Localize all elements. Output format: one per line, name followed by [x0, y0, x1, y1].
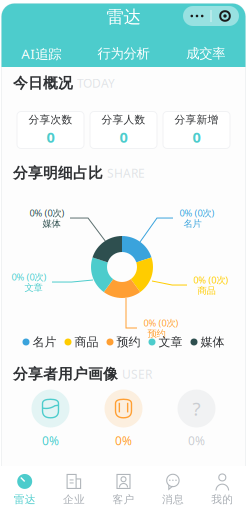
staticText: 名片	[183, 218, 201, 229]
staticText: 0% (0次)	[11, 271, 46, 283]
staticText: 客户	[112, 493, 134, 506]
staticText: 商品	[74, 335, 98, 349]
staticText: 0% (0次)	[193, 274, 228, 286]
staticText: 成交率	[186, 45, 225, 62]
staticText: 0%	[42, 432, 59, 448]
staticText: 0% (0次)	[29, 207, 64, 219]
staticText: 文章	[24, 282, 42, 293]
staticText: 0% (0次)	[179, 207, 214, 219]
staticText: 分享次数	[28, 113, 72, 126]
staticText: 我的	[211, 493, 233, 506]
staticText: 0% (0次)	[143, 317, 178, 329]
staticText: 分享明细占比	[13, 164, 103, 182]
staticText: 预约	[116, 335, 140, 349]
staticText: USER	[122, 366, 152, 382]
button[interactable]: 雷达	[0, 466, 49, 513]
staticText: 0	[192, 127, 200, 147]
staticText: 0%	[188, 432, 205, 448]
staticText: 今日概况	[13, 74, 73, 92]
staticText: AI追踪	[21, 45, 61, 62]
staticText: TODAY	[77, 75, 115, 91]
staticText: 0	[119, 127, 127, 147]
staticText: 分享者用户画像	[13, 365, 118, 383]
staticText: SHARE	[107, 165, 145, 181]
staticText: 商品	[197, 285, 215, 296]
staticText: 0%	[115, 432, 132, 448]
button[interactable]: 企业	[49, 466, 99, 513]
button[interactable]: Menu	[183, 6, 239, 26]
staticText: 媒体	[42, 218, 60, 229]
staticText: 文章	[158, 335, 182, 349]
button[interactable]: 客户	[99, 466, 148, 513]
staticText: 行为分析	[97, 45, 149, 62]
staticText: 消息	[162, 493, 184, 506]
button[interactable]: 消息	[148, 466, 198, 513]
staticText: 名片	[32, 335, 56, 349]
staticText: 预约	[147, 328, 165, 339]
button[interactable]: 行为分析	[82, 38, 165, 69]
staticText: 媒体	[200, 335, 224, 349]
staticText: 分享人数	[101, 113, 145, 126]
button[interactable]: 成交率	[165, 38, 247, 69]
staticText: 0	[46, 127, 54, 147]
staticText: 分享新增	[174, 113, 218, 126]
staticText: 雷达	[14, 493, 36, 506]
button[interactable]: AI追踪	[0, 38, 82, 69]
staticText: 企业	[63, 493, 85, 506]
staticText: 雷达	[106, 6, 140, 28]
staticText: ?	[192, 396, 200, 421]
button[interactable]: 我的	[198, 466, 247, 513]
